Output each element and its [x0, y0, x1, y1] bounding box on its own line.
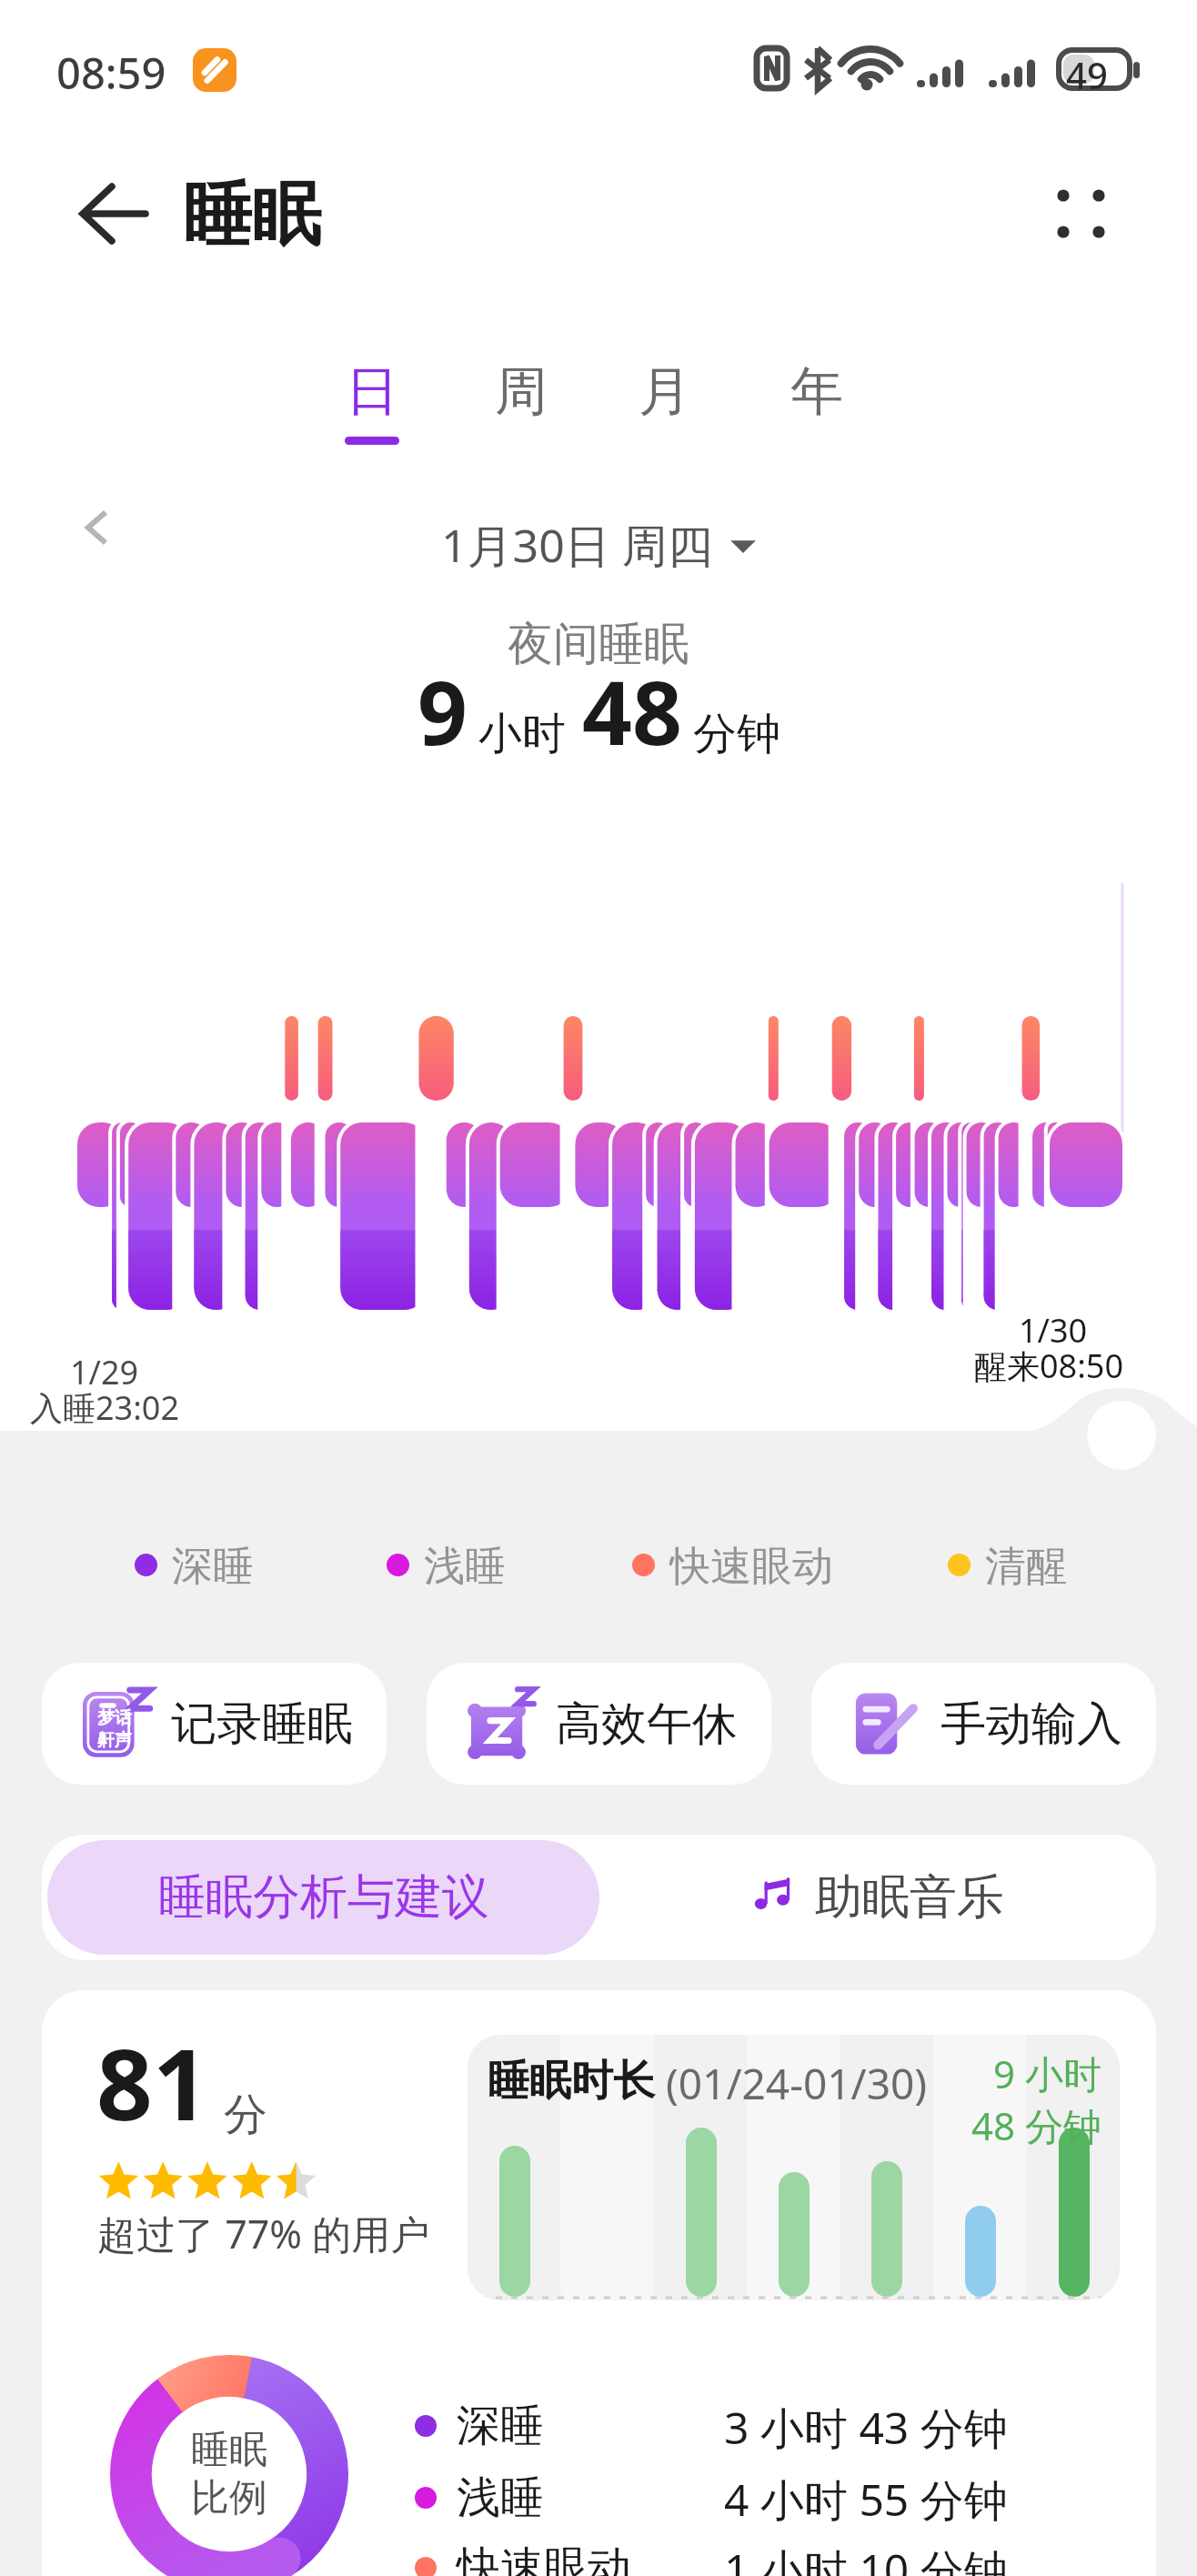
button[interactable]: 月	[599, 342, 730, 462]
staticText: 3 小时 43 分钟	[724, 2398, 1008, 2454]
button[interactable]: Back	[60, 164, 164, 266]
staticText: 9 小时	[993, 2048, 1101, 2099]
staticText: 49	[1066, 50, 1108, 99]
staticText: 日	[346, 358, 398, 425]
button[interactable]: Previous day	[62, 491, 135, 564]
staticText: 超过了 77% 的用户	[97, 2207, 430, 2260]
staticText: 48	[582, 651, 682, 770]
staticText: 手动输入	[940, 1696, 1122, 1753]
staticText: 81	[96, 2016, 209, 2149]
staticText: 睡眠时长	[488, 2055, 655, 2108]
staticText: 年	[790, 358, 843, 425]
staticText: 9	[417, 651, 468, 770]
staticText: 高效午休	[556, 1696, 738, 1753]
staticText: 清醒	[985, 1541, 1067, 1588]
staticText: 鼾声	[97, 1729, 132, 1751]
staticText: 入睡23:02	[30, 1385, 180, 1430]
staticText: 梦话	[97, 1707, 132, 1729]
button[interactable]: 睡眠分析与建议	[47, 1840, 599, 1955]
staticText: 睡眠	[191, 2426, 267, 2474]
staticText: 夜间睡眠	[508, 616, 689, 673]
staticText: 助眠音乐	[815, 1867, 1004, 1927]
staticText: 1/29	[70, 1350, 139, 1394]
staticText: 月	[639, 358, 691, 425]
staticText: (01/24-01/30)	[666, 2055, 928, 2112]
staticText: 深睡	[457, 2399, 544, 2453]
staticText: 小时	[478, 707, 566, 761]
staticText: 1月30日 周四	[441, 514, 713, 576]
staticText: 浅睡	[424, 1541, 506, 1588]
button[interactable]: More options	[1031, 164, 1132, 264]
staticText: 比例	[191, 2474, 267, 2522]
button[interactable]: 年	[751, 342, 882, 462]
button[interactable]: Add sleep record	[1087, 1401, 1156, 1470]
button[interactable]: 梦话	[42, 1663, 387, 1785]
staticText: 快速眼动	[457, 2541, 631, 2576]
staticText: 记录睡眠	[171, 1696, 353, 1753]
button[interactable]: 1月30日 周四	[441, 514, 757, 576]
button[interactable]: 手动输入	[811, 1663, 1156, 1785]
staticText: 周	[495, 358, 548, 425]
button[interactable]: 助眠音乐	[599, 1835, 1156, 1960]
staticText: 睡眠分析与建议	[158, 1867, 489, 1927]
staticText: 快速眼动	[669, 1541, 833, 1588]
staticText: 08:59	[56, 44, 166, 102]
staticText: 深睡	[172, 1541, 254, 1588]
staticText: 1 小时 10 分钟	[724, 2540, 1008, 2576]
staticText: 1/30	[1019, 1308, 1088, 1353]
staticText: 睡眠	[183, 172, 321, 259]
staticText: 48 分钟	[971, 2099, 1101, 2151]
button[interactable]: 日	[307, 342, 438, 462]
staticText: 浅睡	[457, 2470, 544, 2525]
button[interactable]: 高效午休	[427, 1663, 771, 1785]
button[interactable]: 周	[456, 342, 587, 462]
staticText: 4 小时 55 分钟	[724, 2470, 1008, 2526]
staticText: 醒来08:50	[974, 1343, 1124, 1388]
staticText: 分	[224, 2088, 267, 2142]
staticText: 分钟	[693, 707, 780, 761]
